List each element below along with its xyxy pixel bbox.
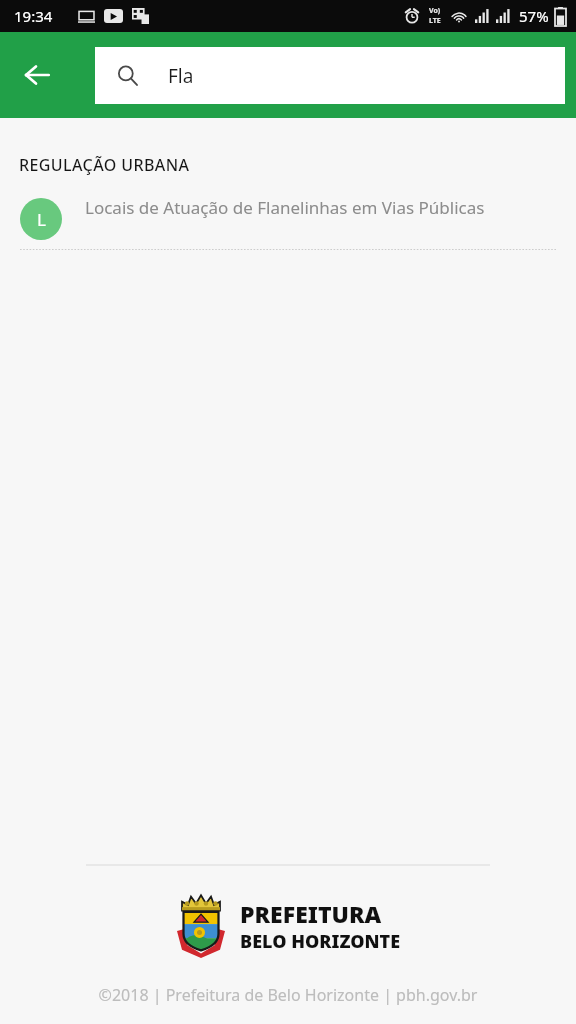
staticText: ©2018 | Prefeitura de Belo Horizonte | p… — [0, 984, 576, 1006]
staticText: 19:34 — [14, 6, 53, 26]
staticText: REGULAÇÃO URBANA — [19, 154, 190, 176]
button[interactable]: Fla — [95, 47, 565, 104]
staticText: BELO HORIZONTE — [240, 929, 401, 954]
staticText: Vo) — [429, 6, 441, 16]
staticText: L — [37, 208, 46, 231]
staticText: 57% — [519, 6, 549, 26]
button[interactable]: Voltar — [10, 48, 64, 102]
staticText: LTE — [429, 16, 441, 26]
staticText: Fla — [168, 63, 194, 89]
button[interactable]: L — [0, 194, 576, 248]
staticText: Locais de Atuação de Flanelinhas em Vias… — [85, 196, 485, 219]
staticText: PREFEITURA — [240, 898, 382, 929]
